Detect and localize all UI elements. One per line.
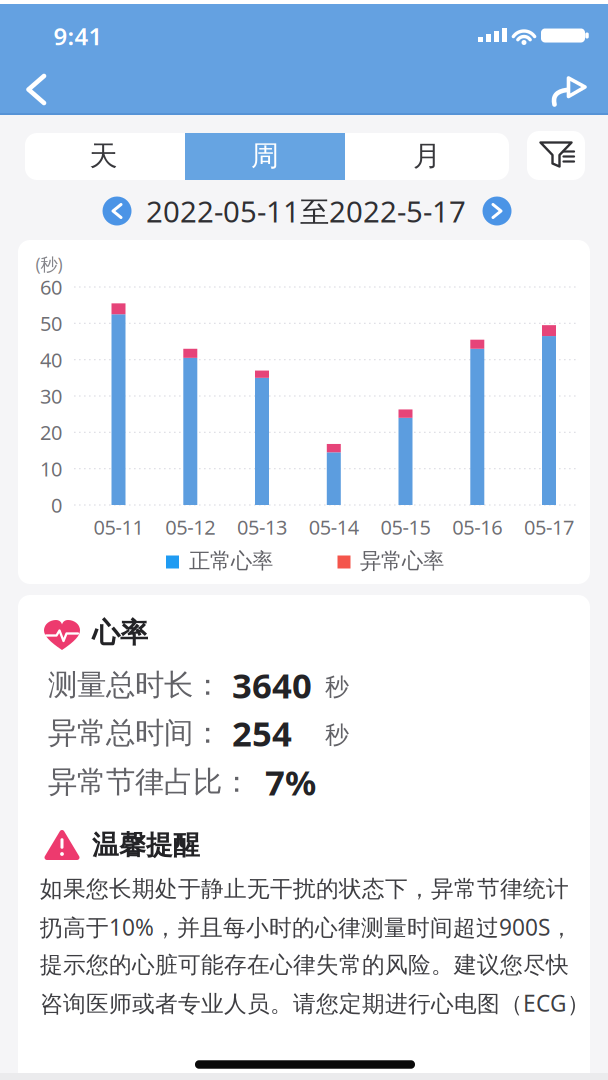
- staticText: 05-14: [309, 514, 359, 540]
- staticText: 月: [413, 139, 441, 173]
- staticText: 天: [89, 139, 117, 173]
- staticText: 30: [40, 383, 62, 409]
- staticText: 异常总时间：: [48, 715, 222, 751]
- staticText: 周: [251, 139, 279, 173]
- staticText: 10: [40, 455, 62, 482]
- staticText: 如果您长期处于静止无干扰的状态下，异常节律统计: [40, 875, 569, 903]
- staticText: (秒): [35, 252, 62, 275]
- staticText: 温馨提醒: [92, 829, 200, 861]
- staticText: 254: [232, 710, 292, 756]
- staticText: 20: [40, 419, 62, 446]
- staticText: 异常节律占比：: [48, 764, 251, 800]
- staticText: 40: [40, 346, 62, 373]
- staticText: 异常心率: [360, 548, 444, 574]
- staticText: 正常心率: [189, 548, 273, 574]
- staticText: 05-15: [380, 514, 430, 540]
- staticText: 05-13: [237, 514, 287, 540]
- staticText: 50: [40, 310, 62, 337]
- staticText: 3640: [232, 662, 312, 708]
- staticText: 05-17: [524, 514, 574, 540]
- staticText: 9:41: [53, 20, 102, 52]
- staticText: 咨询医师或者专业人员。请您定期进行心电图（ECG）: [40, 988, 590, 1018]
- staticText: 05-16: [452, 514, 502, 540]
- staticText: 测量总时长：: [48, 667, 222, 703]
- staticText: 心率: [92, 616, 148, 650]
- staticText: 秒: [325, 720, 349, 750]
- staticText: 扔高于10%，并且每小时的心律测量时间超过900S，: [40, 912, 573, 942]
- staticText: 05-11: [93, 514, 143, 540]
- staticText: 0: [51, 492, 62, 518]
- staticText: 提示您的心脏可能存在心律失常的风险。建议您尽快: [40, 951, 569, 979]
- staticText: 2022-05-11至2022-5-17: [146, 191, 466, 230]
- staticText: 秒: [325, 672, 349, 702]
- staticText: 60: [40, 274, 62, 300]
- staticText: 7%: [265, 759, 316, 805]
- staticText: 05-12: [165, 514, 215, 540]
